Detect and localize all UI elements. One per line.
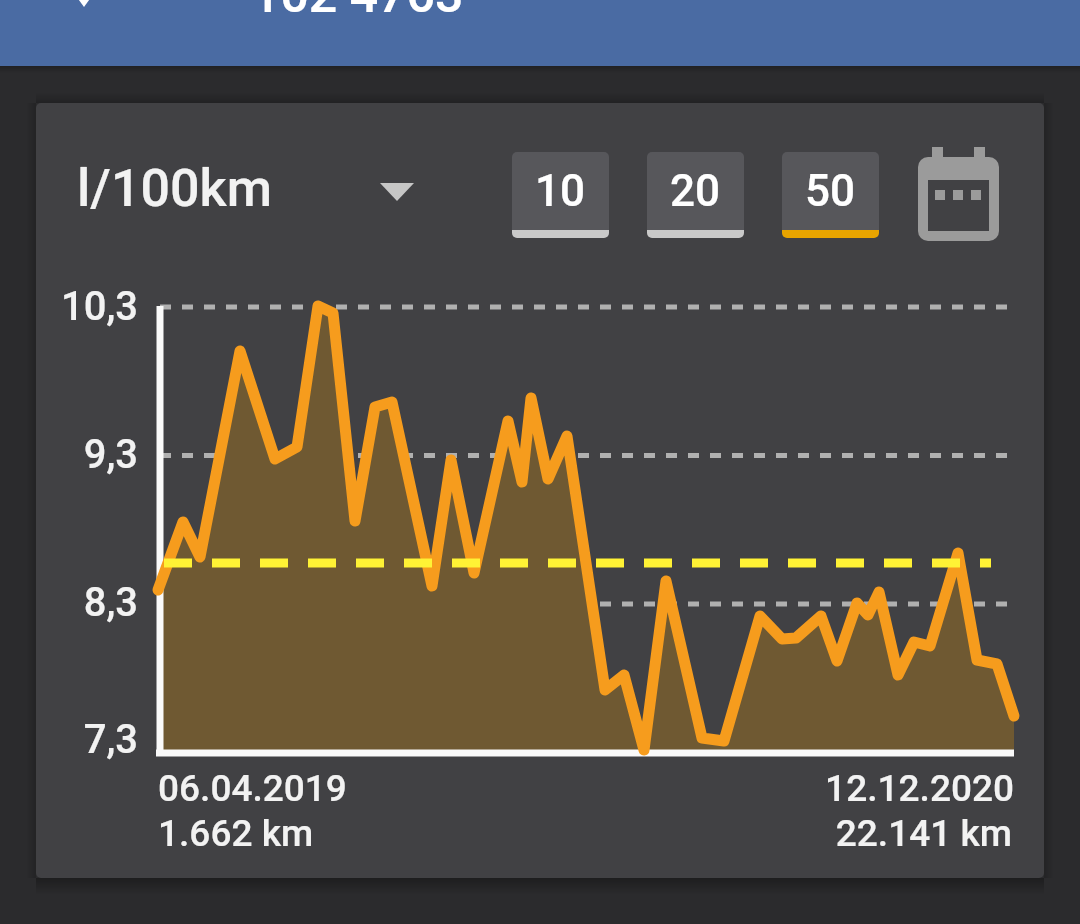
button[interactable]: 10 — [512, 152, 609, 238]
button[interactable]: 20 — [647, 152, 744, 238]
staticText: 20 — [670, 165, 721, 217]
button[interactable] — [0, 0, 120, 66]
staticText: 10,3 — [60, 283, 138, 330]
staticText: 06.04.2019 — [158, 767, 347, 810]
staticText: 50 — [805, 165, 856, 217]
button[interactable] — [918, 147, 1002, 249]
staticText: 10 — [535, 165, 586, 217]
button[interactable]: 50 — [782, 152, 879, 238]
staticText: 9,3 — [83, 431, 138, 478]
staticText: 7,3 — [83, 716, 138, 763]
button[interactable]: l/100km — [66, 153, 426, 233]
staticText: 102 4763 — [252, 0, 464, 25]
staticText: 1.662 km — [158, 812, 314, 855]
staticText: 8,3 — [83, 579, 138, 626]
staticText: 22.141 km — [835, 812, 1012, 855]
staticText: l/100km — [77, 158, 272, 219]
staticText: 12.12.2020 — [825, 767, 1014, 810]
